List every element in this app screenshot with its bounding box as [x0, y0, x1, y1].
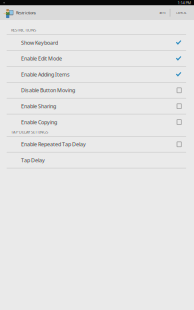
button[interactable]: Enable Edit Mode: [0, 51, 194, 66]
staticText: Enable Edit Mode: [21, 55, 62, 62]
staticText: Enable Copying: [21, 119, 57, 126]
staticText: 1:14 PM: [177, 0, 191, 5]
staticText: Enable Sharing: [21, 103, 56, 110]
button[interactable]: Enable Copying: [0, 114, 194, 130]
button[interactable]: Restrictions: [0, 5, 36, 20]
button[interactable]: Tap Delay: [0, 153, 194, 168]
staticText: CANCEL: [176, 11, 186, 14]
staticText: SAVE: [159, 11, 165, 14]
staticText: Restrictions: [16, 10, 36, 15]
staticText: TAP DELAY SETTINGS: [11, 129, 48, 135]
button[interactable]: Enable Repeated Tap Delay: [0, 137, 194, 152]
staticText: Enable Repeated Tap Delay: [21, 141, 86, 148]
button[interactable]: CANCEL: [170, 5, 191, 20]
staticText: Disable Button Moving: [21, 87, 75, 94]
staticText: Show Keyboard: [21, 39, 58, 46]
staticText: Enable Adding Items: [21, 71, 70, 78]
button[interactable]: Enable Sharing: [0, 99, 194, 114]
button[interactable]: Enable Adding Items: [0, 67, 194, 82]
button[interactable]: Show Keyboard: [0, 35, 194, 50]
staticText: RESTRICTIONS: [11, 27, 36, 33]
button[interactable]: Disable Button Moving: [0, 83, 194, 98]
staticText: Tap Delay: [21, 157, 45, 164]
button[interactable]: SAVE: [155, 5, 170, 20]
